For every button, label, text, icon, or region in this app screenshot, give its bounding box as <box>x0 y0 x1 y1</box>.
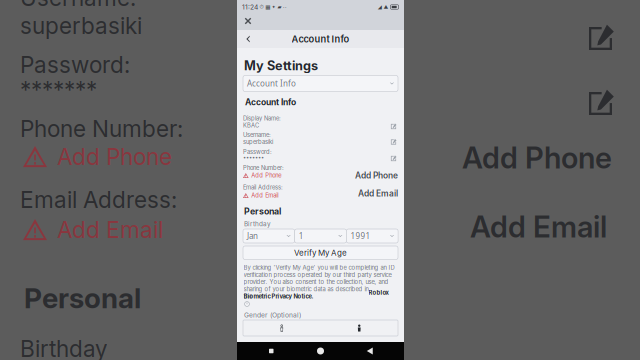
button[interactable]: Recent apps <box>256 342 286 360</box>
staticText: Add Email <box>57 216 163 243</box>
button[interactable]: Roblox <box>368 289 388 296</box>
staticText: ◢ <box>378 4 382 10</box>
staticText: By clicking 'Verify My Age' you will be … <box>243 264 394 271</box>
staticText: Add Phone <box>57 143 172 170</box>
staticText: KBAC <box>243 122 259 129</box>
button[interactable]: Home <box>305 342 335 360</box>
staticText: 11:24 <box>242 3 258 11</box>
staticText: Jan <box>247 231 258 241</box>
button[interactable]: Add Phone <box>243 172 281 179</box>
button[interactable]: Jan <box>243 229 295 243</box>
button[interactable]: Edit display name <box>389 122 398 131</box>
button[interactable]: Female <box>243 320 320 336</box>
staticText: Account Info <box>291 33 349 45</box>
staticText: Phone Number: <box>243 164 284 171</box>
staticText: Add Phone <box>251 172 281 179</box>
staticText: ▲ <box>383 4 388 10</box>
staticText: superbasiki <box>20 12 142 39</box>
staticText: sharing of your biometric data as descri… <box>243 286 368 300</box>
button[interactable]: Add Phone <box>237 170 398 180</box>
staticText: Account Info <box>247 78 296 89</box>
button[interactable]: Back <box>242 33 254 45</box>
staticText: Phone Number: <box>20 115 183 142</box>
staticText: Add Email <box>358 188 398 199</box>
staticText: ******* <box>20 76 97 103</box>
staticText: Add Phone <box>355 170 398 181</box>
button[interactable]: 1991 <box>346 229 398 243</box>
button[interactable]: Account Info <box>243 75 398 91</box>
staticText: Add Email <box>251 192 278 199</box>
button[interactable]: Add Email <box>243 192 278 199</box>
staticText: Email Address: <box>20 186 177 213</box>
staticText: Display Name: <box>243 115 281 122</box>
staticText: provider. You also consent to the collec… <box>243 278 388 285</box>
staticText: Username: <box>20 0 136 11</box>
staticText: ▰ <box>277 4 281 10</box>
staticText: Add Email <box>470 209 607 244</box>
staticText: Username: <box>243 131 271 138</box>
staticText: ⏱ <box>260 4 264 10</box>
staticText: 1991 <box>350 231 370 241</box>
button[interactable]: Verify My Age <box>243 246 398 259</box>
staticText: My Settings <box>244 58 318 73</box>
staticText: verification process operated by our thi… <box>243 271 391 278</box>
button[interactable]: Male <box>320 320 398 336</box>
staticText: ••••••• <box>243 154 264 161</box>
staticText: Password: <box>243 148 272 155</box>
button[interactable]: Edit username <box>389 137 398 146</box>
button[interactable]: Add Email <box>237 188 398 198</box>
button[interactable]: 1 <box>295 229 346 243</box>
staticText: Birthday <box>244 220 271 228</box>
staticText: Biometric Privacy Notice. <box>243 293 313 300</box>
staticText: ✦ <box>272 4 276 10</box>
button[interactable]: Back <box>355 342 385 360</box>
staticText: Birthday <box>20 335 108 360</box>
button[interactable]: Edit password <box>389 154 398 163</box>
button[interactable]: Biometric Privacy Notice. <box>243 293 313 300</box>
staticText: ▦ <box>265 4 270 10</box>
staticText: Email Address: <box>243 184 283 191</box>
staticText: Account Info <box>245 97 296 107</box>
staticText: Verify My Age <box>294 248 347 258</box>
staticText: 1 <box>299 231 304 241</box>
button[interactable]: Close <box>242 15 254 27</box>
staticText: Personal <box>244 206 281 217</box>
staticText: Password: <box>20 51 130 78</box>
staticText: superbasiki <box>243 138 273 145</box>
staticText: ·· <box>283 4 287 10</box>
staticText: Add Phone <box>462 140 612 175</box>
staticText: Roblox <box>368 289 388 296</box>
staticText: Gender (Optional) <box>244 311 301 319</box>
staticText: Personal <box>24 281 141 315</box>
